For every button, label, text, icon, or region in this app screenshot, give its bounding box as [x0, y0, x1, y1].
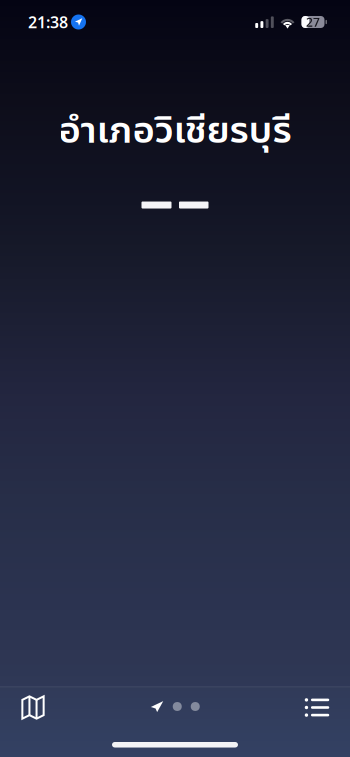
button[interactable]: Weather List [288, 694, 350, 728]
button[interactable]: Weather Map [0, 694, 62, 728]
staticText: อำเภอวิเชียรบุรี [58, 102, 291, 154]
button[interactable]: Current Page [120, 694, 230, 728]
staticText: 21:38 [28, 11, 68, 33]
staticText: 27 [306, 14, 320, 30]
